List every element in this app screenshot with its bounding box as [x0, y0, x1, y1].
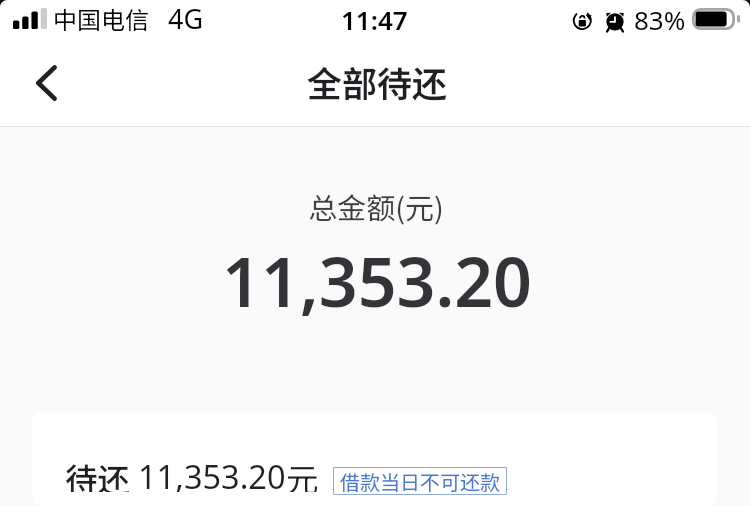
- staticText: 中国电信: [53, 1, 149, 36]
- button[interactable]: Back: [18, 55, 74, 111]
- button[interactable]: 待还: [32, 412, 717, 506]
- staticText: 待还: [65, 454, 138, 492]
- staticText: 元: [286, 454, 319, 492]
- staticText: 83%: [634, 2, 686, 37]
- staticText: 总金额(元): [1, 185, 750, 227]
- staticText: 11:47: [341, 2, 408, 37]
- staticText: 4G: [168, 0, 204, 37]
- staticText: 借款当日不可还款: [340, 467, 500, 495]
- staticText: 全部待还: [307, 56, 448, 107]
- staticText: 11,353.20: [138, 454, 286, 492]
- staticText: 11,353.20: [2, 234, 750, 327]
